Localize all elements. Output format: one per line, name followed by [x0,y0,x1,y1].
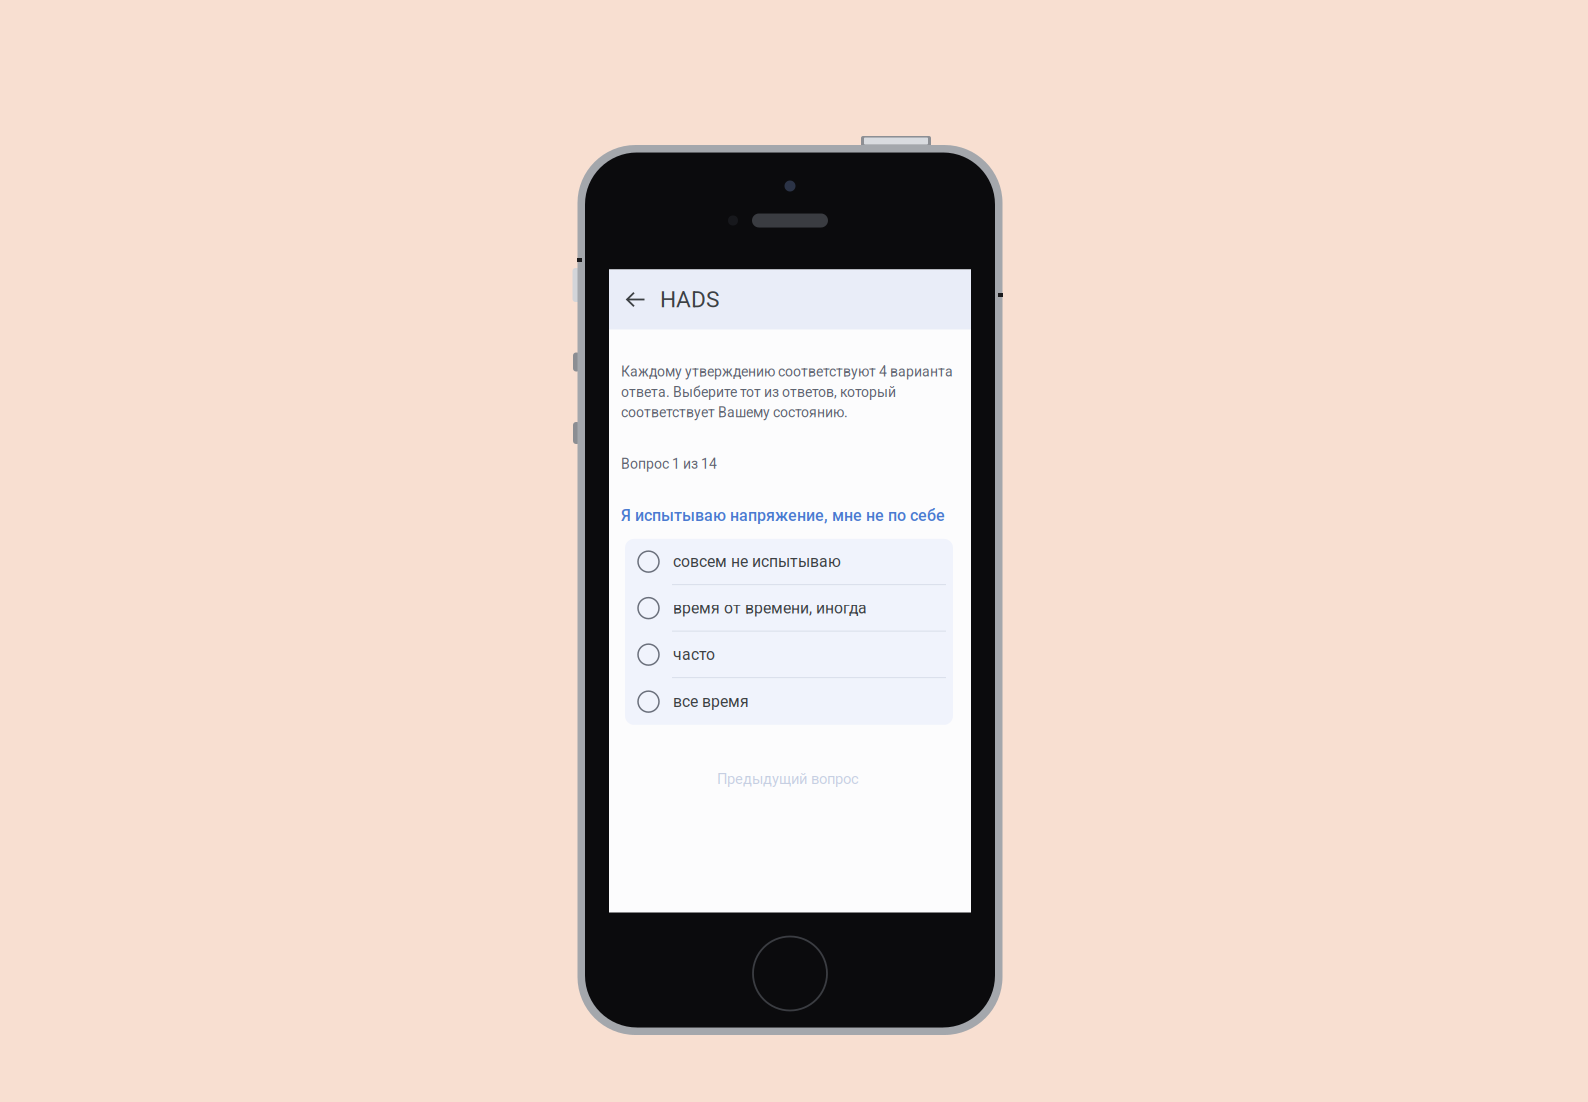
staticText: Я испытываю напряжение, мне не по себе [621,506,945,525]
button[interactable]: Back [609,280,654,318]
button[interactable]: время от времени, иногда [625,585,953,632]
staticText: часто [673,645,715,664]
button[interactable]: часто [625,632,953,678]
staticText: совсем не испытываю [673,552,841,571]
staticText: все время [673,692,749,711]
staticText: HADS [660,286,719,313]
button[interactable]: Предыдущий вопрос [621,763,955,795]
staticText: Предыдущий вопрос [717,770,859,787]
staticText: время от времени, иногда [673,599,867,617]
staticText: Каждому утверждению соответствуют 4 вари… [621,363,953,421]
staticText: Вопрос 1 из 14 [621,456,717,472]
button[interactable]: совсем не испытываю [625,539,953,585]
button[interactable]: все время [625,678,953,725]
